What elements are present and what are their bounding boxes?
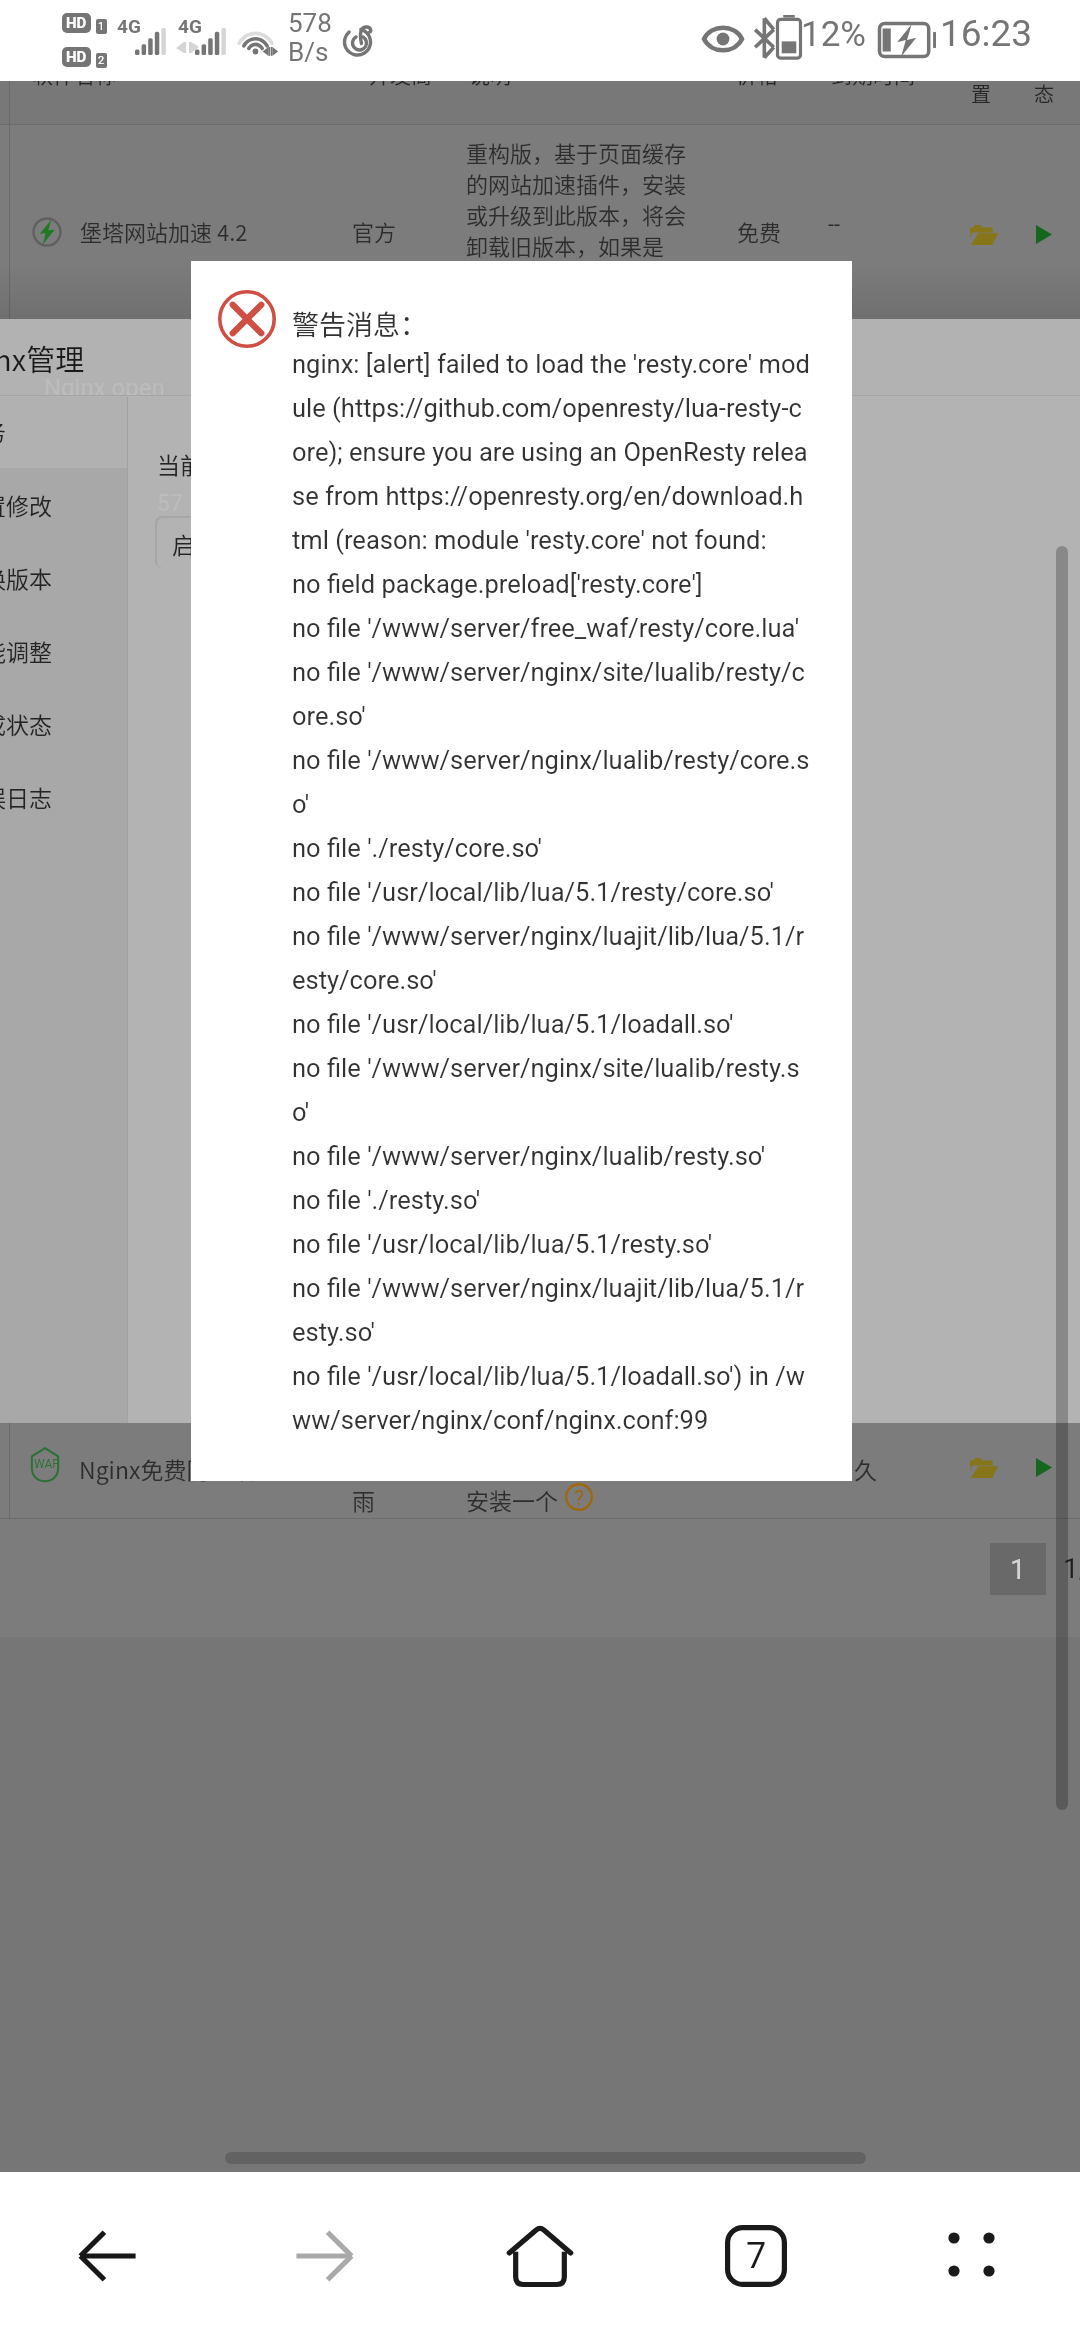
staticText: 误日志 — [0, 780, 52, 813]
staticText: WAF — [34, 1457, 59, 1471]
staticText: ore); ensure you are using an OpenResty … — [292, 437, 808, 467]
staticText: no file '/www/server/nginx/site/lualib/r… — [292, 657, 805, 687]
staticText: 1 — [1010, 1553, 1026, 1586]
button[interactable] — [0, 125, 1080, 307]
button[interactable]: 启动 — [155, 516, 267, 568]
staticText: o' — [292, 1097, 310, 1127]
staticText: 置修改 — [0, 488, 52, 521]
button[interactable]: Home — [432, 2172, 648, 2340]
staticText: 说明 — [469, 59, 511, 89]
button[interactable]: 务 — [0, 405, 127, 455]
staticText: 置 — [971, 79, 991, 108]
staticText: 578 — [288, 8, 332, 38]
staticText: 1 — [98, 20, 105, 33]
staticText: no file '/www/server/nginx/lualib/resty/… — [292, 745, 810, 775]
button[interactable]: Back — [0, 2172, 216, 2340]
staticText: nx管理 — [0, 337, 85, 379]
staticText: 的网站加速插件，安装 — [466, 167, 687, 199]
staticText: no file './resty/core.so' — [292, 833, 542, 863]
staticText: 堡塔网站加速 4.2 — [80, 215, 248, 247]
staticText: se from https://openresty.org/en/downloa… — [292, 481, 804, 511]
button[interactable]: 1 — [990, 1543, 1046, 1595]
staticText: 到期时间 — [831, 59, 915, 89]
staticText: no file '/www/server/free_waf/resty/core… — [292, 613, 800, 643]
button[interactable]: Install Nginx免费防火墙 — [1022, 1443, 1066, 1491]
staticText: no file './resty.so' — [292, 1185, 481, 1215]
staticText: Nginx免费防火墙 — [79, 1452, 256, 1485]
button[interactable]: 成状态 — [0, 698, 127, 748]
staticText: 免费 — [737, 215, 782, 247]
staticText: no file '/usr/local/lib/lua/5.1/resty.so… — [292, 1229, 713, 1259]
staticText: B/s — [288, 37, 329, 67]
staticText: no file '/usr/local/lib/lua/5.1/loadall.… — [292, 1361, 805, 1391]
button[interactable]: Tabs — [648, 2172, 864, 2340]
button[interactable]: Forward — [216, 2172, 432, 2340]
staticText: 16:23 — [940, 12, 1033, 55]
staticText: 久 — [854, 1452, 877, 1485]
staticText: 1/ — [1063, 1552, 1080, 1585]
staticText: 警告消息： — [292, 304, 427, 343]
button[interactable]: Install 堡塔网站加速 — [1022, 210, 1066, 258]
staticText: ule (https://github.com/openresty/lua-re… — [292, 393, 802, 423]
staticText: no field package.preload['resty.core'] — [292, 569, 703, 599]
button[interactable]: Configure Nginx免费防火墙 — [962, 1443, 1006, 1491]
staticText: 软件名称 — [32, 59, 116, 89]
staticText: esty.so' — [292, 1317, 375, 1347]
staticText: tml (reason: module 'resty.core' not fou… — [292, 525, 767, 555]
staticText: esty/core.so' — [292, 965, 437, 995]
button[interactable]: Menu — [864, 2172, 1080, 2340]
staticText: no file '/usr/local/lib/lua/5.1/resty/co… — [292, 877, 774, 907]
staticText: no file '/usr/local/lib/lua/5.1/loadall.… — [292, 1009, 734, 1039]
staticText: HD — [66, 14, 87, 32]
staticText: Nginx open — [44, 374, 165, 402]
staticText: 12% — [801, 14, 866, 55]
staticText: 卸载旧版本，如果是 — [466, 229, 665, 261]
staticText: ww/server/nginx/conf/nginx.conf:99 — [292, 1405, 709, 1435]
staticText: 开发商 — [369, 59, 432, 89]
button[interactable]: 能调整 — [0, 625, 127, 675]
staticText: 启动 — [172, 527, 218, 560]
staticText: ? — [574, 1486, 584, 1511]
staticText: no file '/www/server/nginx/luajit/lib/lu… — [292, 1273, 805, 1303]
staticText: 务 — [0, 414, 6, 447]
staticText: 价格 — [736, 59, 778, 89]
staticText: -- — [828, 212, 841, 238]
staticText: 57 — [157, 490, 183, 517]
staticText: ore.so' — [292, 701, 366, 731]
staticText: 安装一个 — [466, 1483, 558, 1516]
button[interactable]: 误日志 — [0, 771, 127, 821]
staticText: 成状态 — [0, 707, 52, 740]
staticText: 官方 — [352, 215, 397, 247]
staticText: HD — [66, 48, 87, 66]
staticText: 4G — [178, 15, 202, 37]
staticText: 7 — [746, 2235, 767, 2277]
staticText: 当前状态： — [157, 447, 272, 480]
staticText: 雨 — [352, 1483, 375, 1516]
staticText: 态 — [1034, 79, 1054, 108]
button[interactable]: Configure 堡塔网站加速 — [962, 210, 1006, 258]
staticText: 2 — [98, 54, 105, 67]
staticText: no file '/www/server/nginx/luajit/lib/lu… — [292, 921, 805, 951]
button[interactable] — [0, 1424, 1080, 1518]
staticText: nginx: [alert] failed to load the 'resty… — [292, 349, 810, 379]
staticText: 换版本 — [0, 561, 52, 594]
button[interactable]: 换版本 — [0, 552, 127, 602]
staticText: 重构版，基于页面缓存 — [466, 136, 687, 168]
staticText: no file '/www/server/nginx/site/lualib/r… — [292, 1053, 800, 1083]
staticText: 能调整 — [0, 634, 52, 667]
staticText: 4G — [117, 15, 141, 37]
staticText: 或升级到此版本，将会 — [466, 198, 687, 230]
staticText: no file '/www/server/nginx/lualib/resty.… — [292, 1141, 766, 1171]
button[interactable]: 置修改 — [0, 479, 127, 529]
staticText: o' — [292, 789, 310, 819]
